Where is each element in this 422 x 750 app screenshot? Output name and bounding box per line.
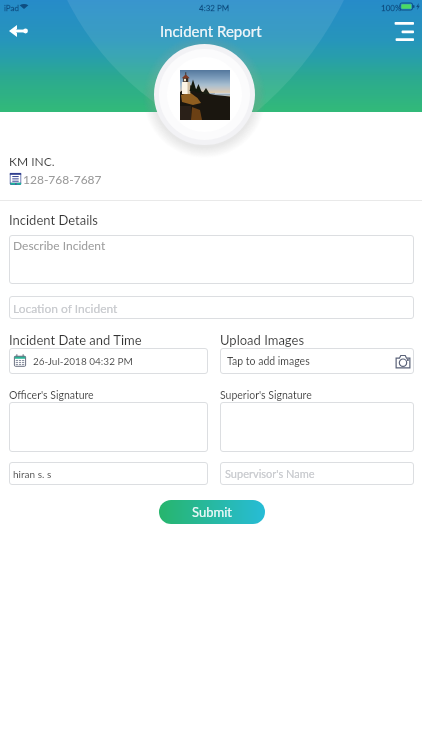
staticText: 100% (381, 3, 402, 13)
staticText: 4:32 PM (199, 3, 230, 13)
staticText: Incident Report (160, 22, 262, 40)
staticText: Upload Images (220, 332, 305, 348)
staticText: Superior's Signature (220, 389, 312, 402)
button[interactable]: Describe Incident (9, 235, 414, 284)
button[interactable]: Supervisor's Name (220, 462, 414, 485)
button[interactable] (9, 402, 208, 452)
button[interactable] (220, 402, 414, 452)
staticText: Supervisor's Name (225, 467, 315, 480)
staticText: Describe Incident (13, 238, 106, 252)
staticText: iPad (4, 3, 19, 13)
staticText: Tap to add images (227, 355, 310, 368)
staticText: Location of Incident (13, 301, 118, 315)
staticText: Submit (192, 504, 232, 520)
staticText: KM INC. (9, 154, 55, 168)
staticText: 26-Jul-2018 04:32 PM (33, 355, 133, 367)
staticText: hiran s. s (13, 468, 52, 480)
staticText: Incident Details (9, 212, 98, 228)
staticText: 128-768-7687 (23, 172, 102, 186)
button[interactable]: 26-Jul-2018 04:32 PM (9, 348, 208, 374)
button[interactable]: Back (0, 13, 36, 49)
button[interactable]: Submit (159, 500, 265, 524)
button[interactable]: Menu (386, 12, 422, 50)
button[interactable]: hiran s. s (9, 462, 208, 485)
button[interactable]: Tap to add images (220, 348, 414, 374)
staticText: Officer's Signature (9, 389, 94, 402)
button[interactable]: Location of Incident (9, 296, 414, 319)
staticText: Incident Date and Time (9, 332, 142, 348)
